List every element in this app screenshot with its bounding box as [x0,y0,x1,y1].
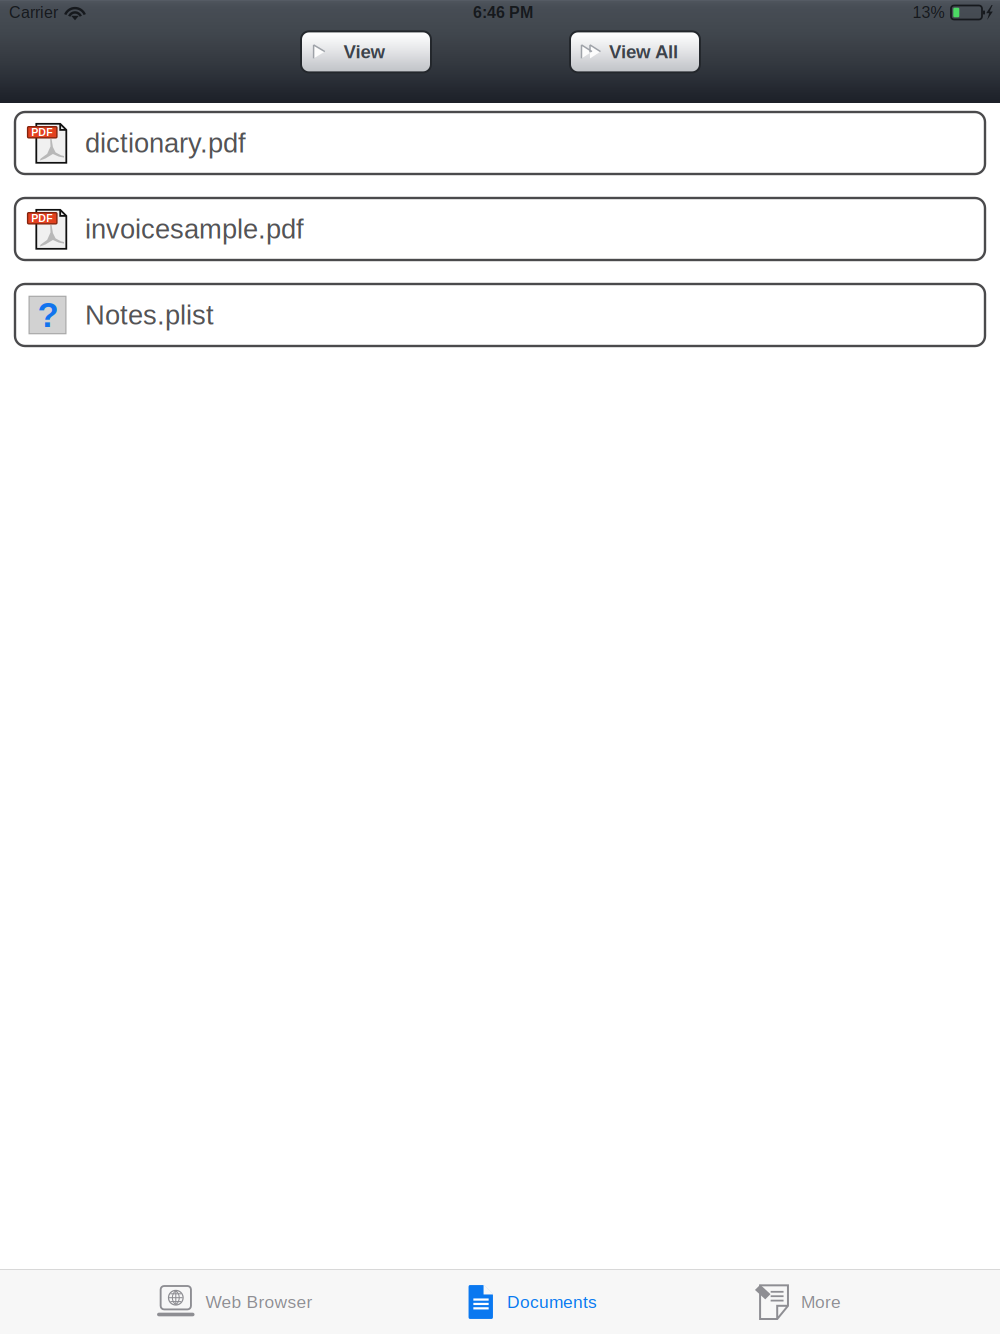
staticText: ? [37,296,58,334]
staticText: View [343,41,385,62]
button[interactable]: More [755,1270,841,1334]
staticText: invoicesample.pdf [85,214,304,244]
staticText: View All [609,41,678,62]
staticText: PDF [31,126,53,138]
button[interactable]: ? [15,284,985,346]
button[interactable]: Documents [469,1270,597,1334]
staticText: dictionary.pdf [85,128,246,158]
button[interactable]: PDF [15,198,985,260]
staticText: PDF [31,212,53,224]
staticText: Web Browser [206,1292,313,1312]
button[interactable]: View [301,31,431,72]
staticText: Notes.plist [85,300,214,330]
staticText: Carrier [9,4,58,21]
staticText: 6:46 PM [473,4,533,21]
staticText: More [801,1292,841,1312]
button[interactable]: Web Browser [157,1270,313,1334]
staticText: 13% [912,4,944,21]
button[interactable]: PDF [15,112,985,174]
staticText: Documents [507,1292,597,1312]
button[interactable]: View All [570,31,700,72]
